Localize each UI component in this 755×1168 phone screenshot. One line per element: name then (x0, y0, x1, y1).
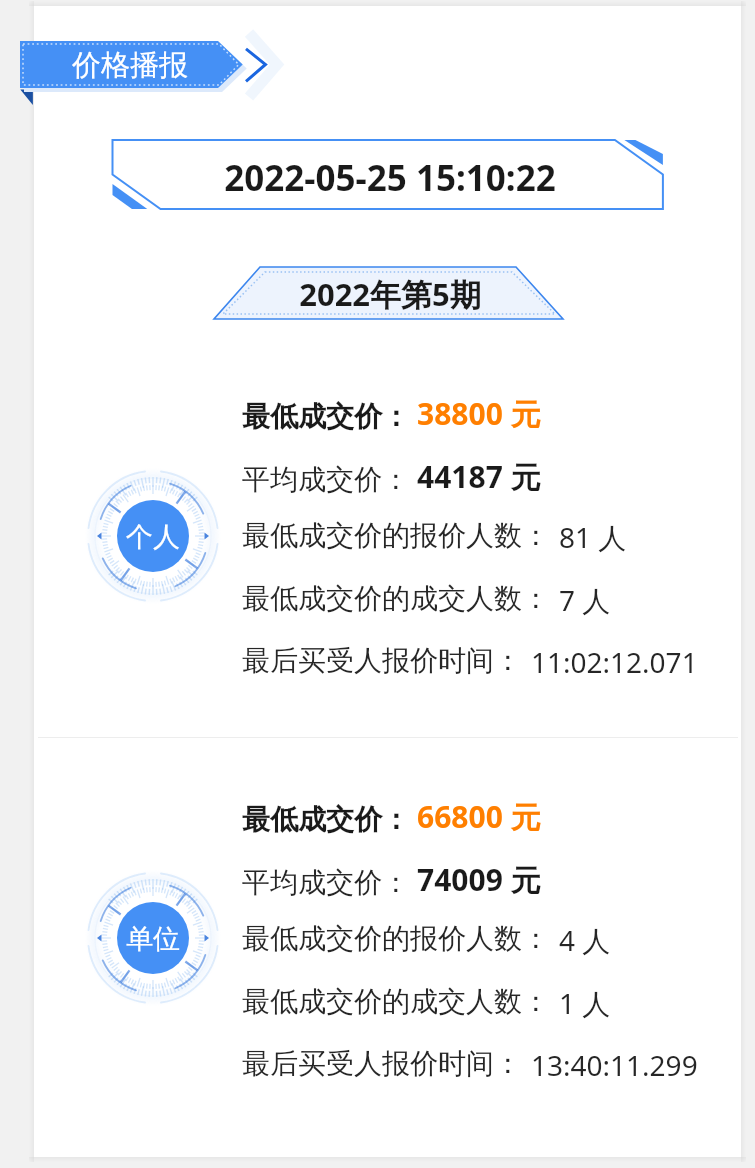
button[interactable]: 价格播报 (0, 30, 320, 115)
staticText: 13:40:11.299 (531, 1046, 698, 1084)
staticText: 最低成交价： (242, 802, 410, 837)
staticText: 81 人 (559, 518, 627, 556)
staticText: 11:02:12.071 (531, 643, 698, 681)
staticText: 最低成交价的报价人数： (242, 921, 550, 956)
staticText: 38800 元 (417, 393, 541, 434)
staticText: 平均成交价： (242, 865, 410, 900)
staticText: 7 人 (559, 581, 611, 619)
staticText: 最后买受人报价时间： (242, 1046, 522, 1081)
staticText: 单位 (78, 922, 228, 956)
staticText: 2022年第5期 (200, 273, 580, 315)
staticText: 44187 元 (417, 456, 541, 497)
staticText: 价格播报 (72, 47, 188, 84)
staticText: 最后买受人报价时间： (242, 643, 522, 678)
staticText: 最低成交价的成交人数： (242, 984, 550, 1019)
staticText: 平均成交价： (242, 462, 410, 497)
staticText: 2022-05-25 15:10:22 (100, 154, 680, 202)
staticText: 个人 (78, 520, 228, 554)
staticText: 最低成交价： (242, 399, 410, 434)
staticText: 最低成交价的成交人数： (242, 581, 550, 616)
button[interactable]: 个人 竞买类别 (78, 461, 228, 611)
staticText: 最低成交价的报价人数： (242, 518, 550, 553)
button[interactable]: 单位 竞买类别 (78, 863, 228, 1013)
button[interactable] (34, 763, 741, 1140)
staticText: 1 人 (559, 984, 611, 1022)
staticText: 4 人 (559, 921, 611, 959)
staticText: 74009 元 (417, 859, 541, 900)
staticText: 66800 元 (417, 796, 541, 837)
button[interactable] (34, 360, 741, 737)
